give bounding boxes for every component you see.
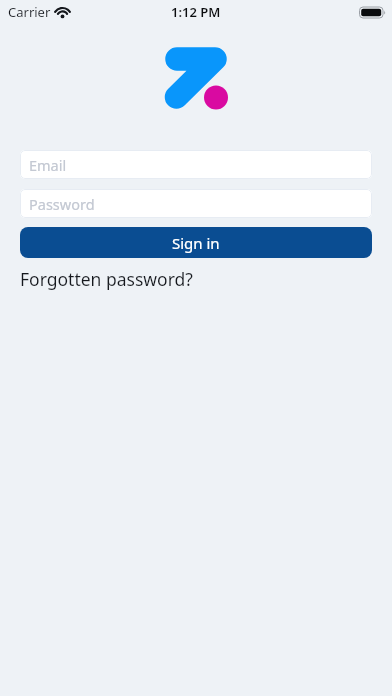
staticText: Forgotten password?: [20, 267, 193, 291]
staticText: Sign in: [172, 233, 220, 253]
staticText: Email: [29, 155, 67, 175]
button[interactable]: Password: [20, 189, 372, 218]
staticText: 1:12 PM: [171, 3, 221, 21]
button[interactable]: Email: [20, 150, 372, 179]
staticText: Password: [29, 194, 95, 214]
staticText: Carrier: [8, 3, 51, 21]
button[interactable]: Sign in: [20, 227, 372, 258]
button[interactable]: Forgotten password?: [20, 267, 193, 291]
